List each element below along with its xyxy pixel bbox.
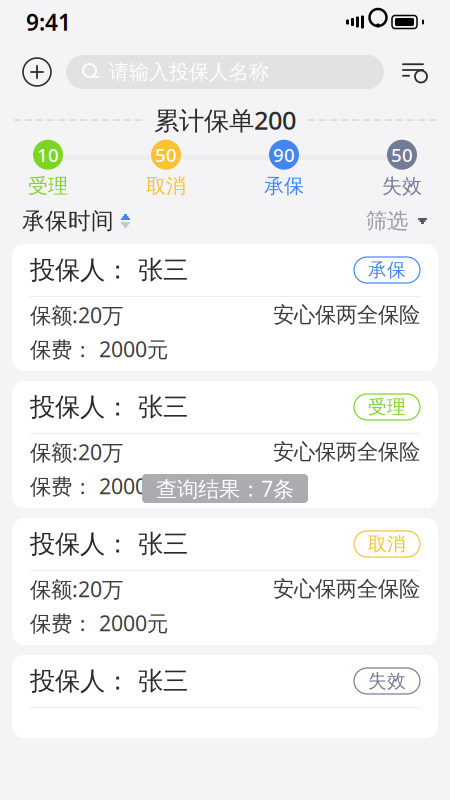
staticText: 保费： 2000元 — [30, 335, 168, 363]
staticText: 投保人： 张三 — [30, 528, 188, 559]
staticText: 安心保两全保险 — [273, 439, 420, 465]
staticText: 投保人： 张三 — [30, 391, 188, 422]
button[interactable]: 投保人： 张三 — [12, 655, 438, 738]
staticText: 取消 — [146, 174, 186, 198]
staticText: 保额:20万 — [30, 301, 123, 329]
staticText: 累计保单200 — [154, 103, 296, 137]
staticText: 保额:20万 — [30, 575, 123, 603]
staticText: 承保时间 — [22, 207, 114, 235]
staticText: 受理 — [28, 174, 68, 198]
staticText: 保费： 2000元 — [30, 609, 168, 637]
staticText: 安心保两全保险 — [273, 576, 420, 602]
staticText: 保额:20万 — [30, 438, 123, 466]
staticText: 承保 — [264, 174, 304, 198]
staticText: 受理 — [368, 395, 406, 418]
button[interactable]: 投保人： 张三 — [12, 244, 438, 371]
button[interactable]: 承保时间 — [22, 207, 130, 235]
staticText: 请输入投保人名称 — [109, 60, 269, 84]
staticText: 保费： 2000元 — [30, 472, 168, 500]
staticText: 失效 — [382, 174, 422, 198]
staticText: 失效 — [368, 669, 406, 692]
staticText: 安心保两全保险 — [273, 302, 420, 328]
staticText: 10 — [37, 142, 59, 167]
staticText: 50 — [155, 142, 177, 167]
staticText: 查询结果：7条 — [156, 474, 294, 503]
button[interactable]: 投保人： 张三 — [12, 518, 438, 645]
staticText: 投保人： 张三 — [30, 665, 188, 696]
button[interactable]: 筛选搜索 — [398, 57, 428, 87]
staticText: 投保人： 张三 — [30, 254, 188, 285]
staticText: 50 — [391, 142, 413, 167]
staticText: 9:41 — [26, 7, 71, 37]
staticText: 承保 — [368, 258, 406, 281]
staticText: 取消 — [368, 532, 406, 555]
staticText: 筛选 — [366, 208, 408, 234]
button[interactable]: 请输入投保人名称 — [66, 55, 384, 89]
button[interactable]: 新增 — [22, 57, 52, 87]
button[interactable]: 筛选 — [366, 208, 428, 234]
staticText: 90 — [273, 142, 295, 167]
button[interactable]: 投保人： 张三 — [12, 381, 438, 508]
